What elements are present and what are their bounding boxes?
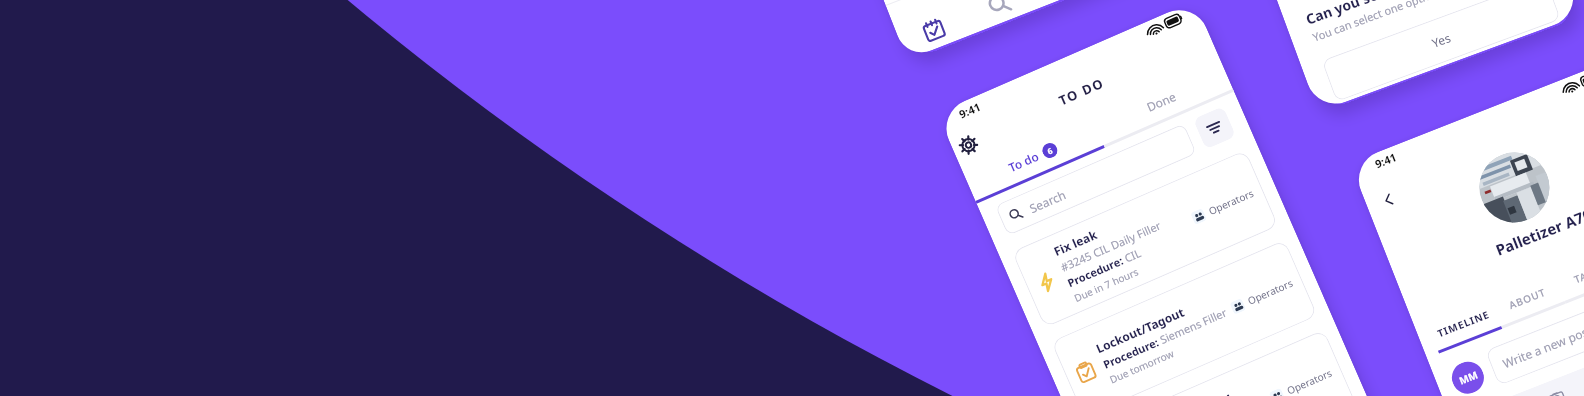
button[interactable]: Filter [1193, 106, 1236, 149]
staticText: Write a new post [1500, 321, 1584, 371]
staticText: 6 [1045, 144, 1054, 157]
staticText: Procedure: [1101, 333, 1163, 372]
staticText: ABOUT [1507, 285, 1548, 312]
staticText: #3245 CIL Daily Filler [1058, 218, 1163, 275]
button[interactable]: Tasks [893, 0, 973, 60]
staticText: Operators [1285, 365, 1334, 396]
staticText: Operators [1245, 276, 1295, 308]
button[interactable]: Done [1091, 59, 1234, 148]
button[interactable]: ABOUT [1491, 275, 1566, 329]
button[interactable]: Settings [949, 125, 988, 165]
staticText: TIMELINE [1435, 307, 1492, 340]
staticText: Procedure: [1065, 252, 1128, 290]
staticText: You can select one option [1310, 0, 1439, 45]
staticText: Inspection level 1 [1133, 389, 1235, 396]
staticText: TO DO [1056, 74, 1107, 109]
button[interactable]: Write a new post [1485, 274, 1584, 386]
staticText: CIL [1122, 245, 1143, 265]
staticText: Due in 7 hours [1072, 264, 1141, 305]
button[interactable]: TIMELINE [1428, 300, 1502, 354]
staticText: 9:41 [1372, 149, 1398, 171]
staticText: Palletizer A700 [1493, 200, 1584, 260]
button[interactable]: Search [960, 0, 1038, 34]
button[interactable] [1504, 363, 1584, 396]
staticText: Done [1144, 88, 1179, 115]
staticText: Operators [1206, 186, 1256, 218]
staticText: TASKS [1572, 261, 1584, 286]
staticText: To do [1006, 148, 1041, 175]
staticText: Due tomorrow [1107, 346, 1176, 386]
button[interactable]: Yes [1321, 0, 1561, 102]
staticText: Can you solve it? [1303, 0, 1420, 29]
staticText: Fix leak [1051, 226, 1100, 259]
staticText: Yes [1429, 29, 1453, 51]
button[interactable]: To do [963, 116, 1105, 204]
button[interactable]: Search [995, 123, 1197, 236]
staticText: MM [1457, 368, 1480, 388]
button[interactable]: Inspection level 1 [1090, 329, 1357, 396]
staticText: 9:41 [956, 99, 983, 121]
button[interactable]: Back [1370, 181, 1406, 218]
button[interactable]: TASKS [1554, 250, 1584, 304]
button[interactable]: Fix leak [1012, 150, 1279, 328]
staticText: Siemens Filler Machine [1157, 304, 1231, 347]
staticText: Lockout/Tagout [1093, 304, 1187, 356]
button[interactable]: Notifications [1025, 0, 1103, 9]
button[interactable]: Lockout/Tagout [1051, 240, 1318, 396]
staticText: Search [1027, 186, 1068, 216]
